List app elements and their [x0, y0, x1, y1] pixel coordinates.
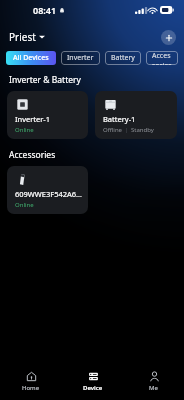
button[interactable]: Home — [0, 364, 62, 400]
button[interactable]: All Devices — [6, 51, 56, 65]
button[interactable]: Battery — [105, 51, 141, 65]
staticText: Online — [15, 126, 34, 134]
staticText: Accessories — [152, 51, 172, 65]
staticText: Accessories — [9, 149, 56, 161]
button[interactable]: Inverter — [61, 51, 100, 65]
staticText: Inverter & Battery — [9, 74, 81, 86]
staticText: 08:41 — [33, 4, 57, 16]
button[interactable]: Add device — [161, 30, 176, 45]
button[interactable]: Battery-1 — [95, 91, 177, 139]
staticText: Device — [83, 384, 103, 392]
staticText: Offline — [103, 126, 123, 134]
staticText: Standby — [131, 126, 154, 134]
staticText: Inverter-1 — [15, 114, 51, 124]
button[interactable]: Device — [62, 364, 123, 400]
staticText: Online — [15, 201, 34, 209]
button[interactable]: Accessories — [146, 51, 178, 65]
staticText: Battery-1 — [103, 114, 136, 124]
button[interactable]: Inverter-1 — [7, 91, 88, 139]
staticText: All Devices — [13, 53, 49, 63]
staticText: Inverter — [67, 53, 94, 63]
staticText: Priest — [9, 30, 36, 44]
button[interactable]: Me — [123, 364, 184, 400]
staticText: Battery — [111, 53, 135, 63]
staticText: | — [125, 126, 129, 134]
staticText: Home — [22, 384, 40, 392]
staticText: Me — [149, 384, 158, 392]
button[interactable]: 609WWE3F542A685 — [7, 166, 88, 214]
button[interactable]: Priest — [7, 28, 47, 46]
staticText: 609WWE3F542A685 — [15, 189, 83, 199]
